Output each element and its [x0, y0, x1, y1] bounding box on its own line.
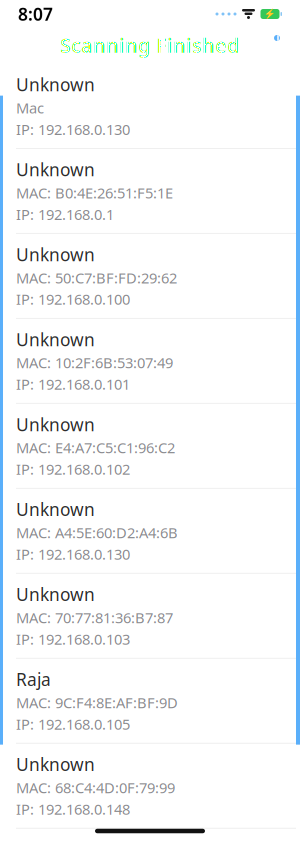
button[interactable]: Refresh	[256, 28, 290, 62]
button[interactable]: Unknown	[3, 149, 296, 234]
staticText: Scanning Finished	[60, 32, 240, 58]
button[interactable]: Unknown	[3, 744, 296, 829]
staticText: Unknown	[16, 413, 95, 436]
staticText: MAC: 50:C7:BF:FD:29:62	[16, 268, 177, 287]
staticText: MAC: A4:5E:60:D2:A4:6B	[16, 523, 178, 542]
staticText: MAC: E4:A7:C5:C1:96:C2	[16, 438, 175, 457]
staticText: ⚡	[264, 9, 276, 19]
staticText: IP: 192.168.0.105	[16, 714, 130, 734]
button[interactable]: Unknown	[3, 404, 296, 489]
staticText: IP: 192.168.0.103	[16, 629, 130, 649]
staticText: MAC: 68:C4:4D:0F:79:99	[16, 778, 175, 797]
staticText: Unknown	[16, 583, 95, 606]
button[interactable]: Unknown	[3, 234, 296, 319]
staticText: MAC: B0:4E:26:51:F5:1E	[16, 183, 173, 202]
staticText: Raja	[16, 668, 51, 691]
staticText: IP: 192.168.0.148	[16, 799, 130, 819]
button[interactable]: Raja	[3, 659, 296, 744]
staticText: IP: 192.168.0.101	[16, 374, 130, 394]
staticText: Unknown	[16, 328, 95, 351]
button[interactable]: Unknown	[3, 574, 296, 659]
staticText: IP: 192.168.0.130	[16, 544, 130, 564]
staticText: Unknown	[16, 243, 95, 266]
staticText: Unknown	[16, 498, 95, 521]
staticText: Unknown	[16, 158, 95, 181]
button[interactable]: Unknown	[3, 319, 296, 404]
staticText: IP: 192.168.0.1	[16, 204, 114, 224]
staticText: Unknown	[16, 73, 95, 96]
staticText: IP: 192.168.0.130	[16, 119, 130, 139]
staticText: Mac	[16, 98, 44, 117]
button[interactable]: Unknown	[3, 489, 296, 574]
button[interactable]: Unknown	[3, 64, 296, 149]
staticText: Unknown	[16, 753, 95, 776]
staticText: IP: 192.168.0.100	[16, 289, 130, 309]
staticText: IP: 192.168.0.102	[16, 459, 130, 479]
staticText: MAC: 9C:F4:8E:AF:BF:9D	[16, 693, 178, 712]
staticText: MAC: 10:2F:6B:53:07:49	[16, 353, 173, 372]
staticText: MAC: 70:77:81:36:B7:87	[16, 608, 173, 627]
